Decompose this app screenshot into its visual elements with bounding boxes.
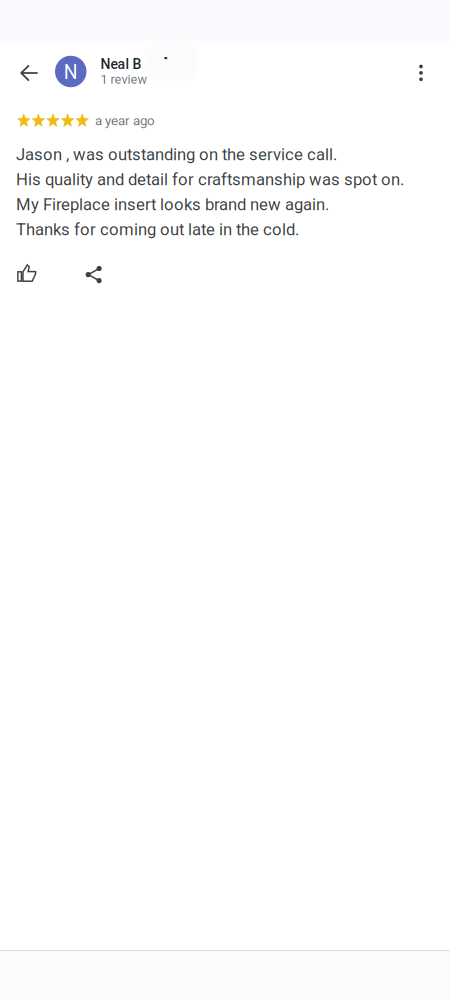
staticText: Neal B <box>100 56 141 72</box>
staticText: Thanks for coming out late in the cold. <box>16 220 299 239</box>
staticText: His quality and detail for craftsmanship… <box>16 170 404 189</box>
button[interactable]: Like <box>5 253 49 293</box>
staticText: 1 review <box>100 72 147 87</box>
staticText: My Fireplace insert looks brand new agai… <box>16 195 329 214</box>
button[interactable]: Share <box>71 254 115 294</box>
staticText: Jason , was outstanding on the service c… <box>16 145 337 164</box>
button[interactable]: More options <box>399 51 443 95</box>
staticText: a year ago <box>95 113 155 129</box>
button[interactable]: Back <box>7 51 51 95</box>
staticText: N <box>64 61 78 84</box>
